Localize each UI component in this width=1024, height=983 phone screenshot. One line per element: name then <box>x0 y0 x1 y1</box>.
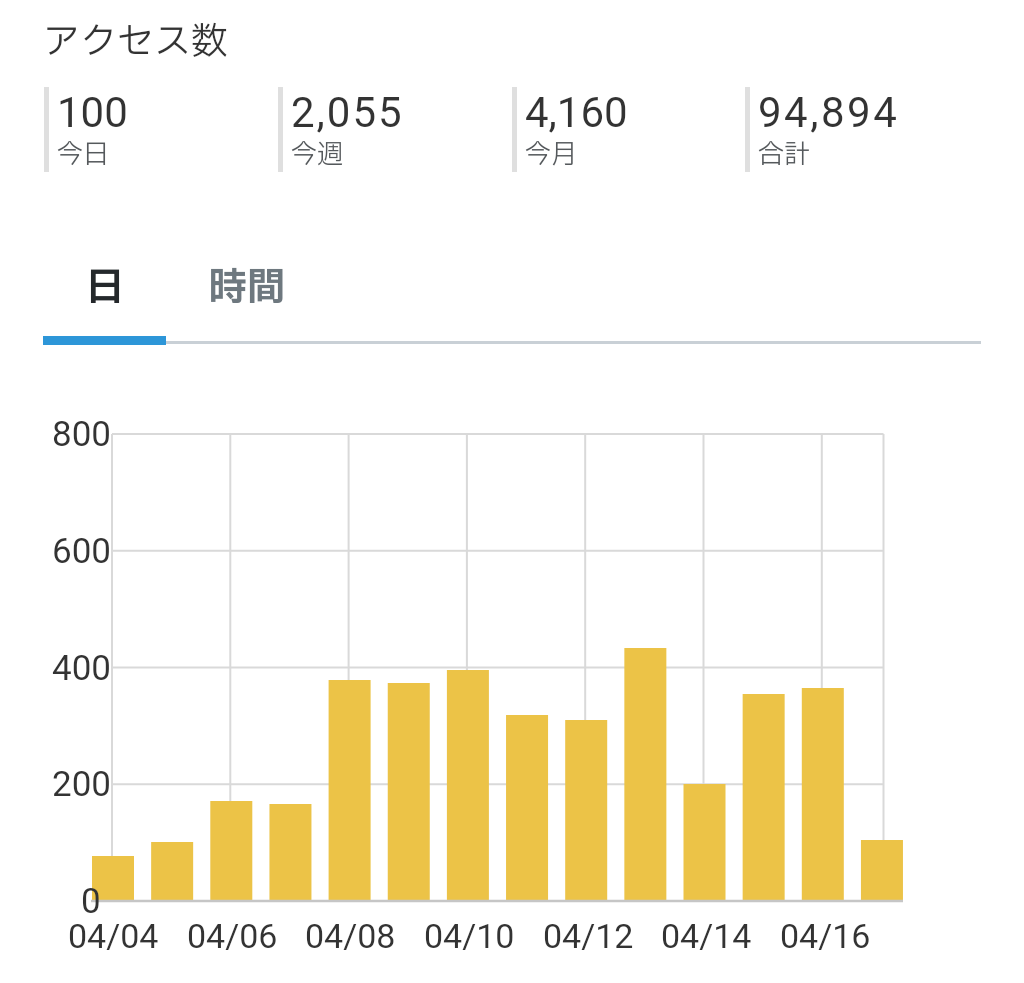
staticText: 時間 <box>209 260 286 316</box>
staticText: 2,055 <box>291 88 404 137</box>
staticText: アクセス数 <box>43 15 228 70</box>
staticText: 今週 <box>291 135 344 174</box>
staticText: 04/12 <box>543 916 634 956</box>
staticText: 94,894 <box>758 88 900 137</box>
staticText: 今月 <box>525 135 578 174</box>
button[interactable]: 時間 <box>168 260 326 316</box>
staticText: 04/16 <box>780 916 871 956</box>
staticText: 200 <box>52 764 112 805</box>
staticText: 04/06 <box>187 916 278 956</box>
button[interactable]: 日 <box>44 260 167 316</box>
staticText: 0 <box>81 881 101 922</box>
staticText: 400 <box>52 648 112 689</box>
staticText: 04/14 <box>661 916 752 956</box>
staticText: 600 <box>52 531 112 572</box>
staticText: 日 <box>86 260 125 316</box>
staticText: 800 <box>52 414 112 455</box>
staticText: 04/04 <box>68 916 159 956</box>
staticText: 04/08 <box>305 916 396 956</box>
staticText: 100 <box>57 88 128 137</box>
staticText: 合計 <box>758 135 811 174</box>
staticText: 4,160 <box>525 88 628 137</box>
staticText: 今日 <box>57 135 110 174</box>
staticText: 04/10 <box>424 916 515 956</box>
